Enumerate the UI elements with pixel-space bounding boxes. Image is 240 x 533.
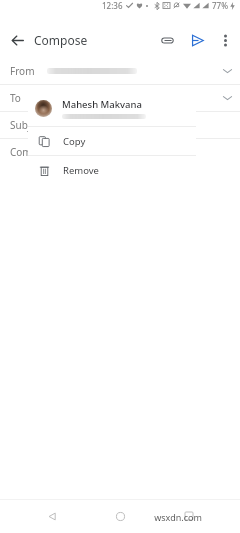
staticText: Mahesh Makvana: [62, 98, 142, 111]
button[interactable]: Compose email: [0, 139, 240, 165]
button[interactable]: Send: [182, 25, 212, 55]
button[interactable]: Back: [35, 499, 69, 533]
button[interactable]: To: [0, 85, 240, 112]
staticText: Subject: [10, 118, 45, 132]
staticText: To: [10, 91, 21, 105]
button[interactable]: More options: [212, 27, 238, 53]
button[interactable]: From: [0, 58, 240, 85]
staticText: Remove: [63, 164, 99, 177]
button[interactable]: Mahesh Makvana: [28, 90, 196, 126]
staticText: 12:36: [102, 0, 123, 11]
staticText: Compose: [34, 32, 88, 48]
button[interactable]: Subject: [0, 112, 240, 139]
button[interactable]: Attach file: [152, 25, 182, 55]
button[interactable]: Recent apps: [172, 499, 206, 533]
staticText: 77%: [212, 0, 228, 11]
staticText: From: [10, 64, 35, 78]
staticText: wsxdn.com: [154, 511, 202, 523]
staticText: Compose email: [10, 145, 83, 159]
button[interactable]: Copy: [28, 127, 196, 155]
button[interactable]: Home: [103, 499, 137, 533]
button[interactable]: Back: [0, 23, 34, 57]
button[interactable]: Remove: [28, 156, 196, 184]
staticText: Copy: [63, 135, 86, 148]
